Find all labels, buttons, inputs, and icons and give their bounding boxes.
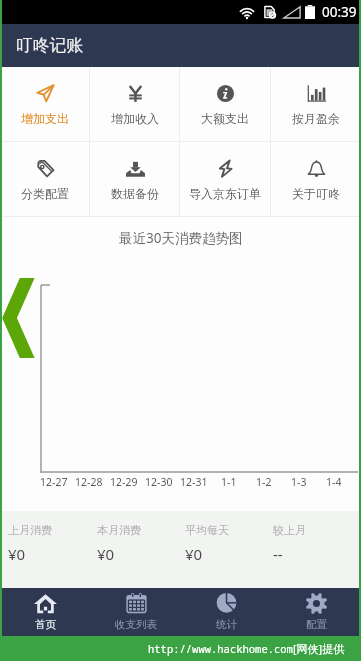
button[interactable]: 关于叮咚 — [271, 142, 361, 216]
staticText: 12-27 — [40, 475, 68, 489]
button[interactable]: 导入京东订单 — [180, 142, 270, 216]
staticText: ¥0 — [97, 544, 115, 564]
button[interactable]: 首页 — [0, 588, 91, 636]
staticText: 首页 — [35, 618, 56, 631]
button[interactable]: 平均每天 — [185, 523, 273, 588]
button[interactable]: 本月消费 — [97, 523, 185, 588]
staticText: 12-28 — [75, 475, 103, 489]
staticText: 大额支出 — [201, 111, 249, 126]
staticText: 12-29 — [110, 475, 138, 489]
staticText: 按月盈余 — [292, 111, 340, 126]
staticText: 统计 — [216, 618, 237, 631]
staticText: 增加收入 — [111, 111, 159, 126]
button[interactable]: 上月消费 — [8, 523, 97, 588]
staticText: 叮咚记账 — [16, 35, 84, 56]
staticText: 1-1 — [221, 475, 237, 489]
staticText: ¥0 — [185, 544, 203, 564]
staticText: -- — [273, 544, 283, 564]
staticText: 1-3 — [291, 475, 307, 489]
staticText: 导入京东订单 — [189, 186, 261, 201]
button[interactable]: 数据备份 — [90, 142, 179, 216]
staticText: [网侠]提供 — [293, 641, 345, 656]
staticText: 00:39 — [322, 3, 357, 21]
button[interactable]: 叮咚记账 — [0, 24, 361, 67]
button[interactable]: 大额支出 — [180, 67, 270, 141]
staticText: 较上月 — [273, 523, 306, 537]
staticText: 平均每天 — [185, 523, 229, 537]
staticText: 上月消费 — [8, 523, 52, 537]
staticText: 收支列表 — [115, 618, 157, 631]
staticText: 数据备份 — [111, 186, 159, 201]
staticText: 最近30天消费趋势图 — [119, 229, 243, 247]
button[interactable]: 增加支出 — [0, 67, 89, 141]
button[interactable]: 配置 — [271, 588, 361, 636]
button[interactable]: 按月盈余 — [271, 67, 361, 141]
button[interactable]: 较上月 — [273, 523, 361, 588]
staticText: 配置 — [306, 618, 327, 631]
staticText: 增加支出 — [21, 111, 69, 126]
staticText: 12-30 — [145, 475, 173, 489]
staticText: 本月消费 — [97, 523, 141, 537]
staticText: http://www.hackhome.com — [148, 642, 293, 656]
button[interactable]: 分类配置 — [0, 142, 89, 216]
staticText: 1-4 — [326, 475, 342, 489]
staticText: 12-31 — [180, 475, 208, 489]
staticText: 分类配置 — [21, 186, 69, 201]
staticText: 关于叮咚 — [292, 186, 340, 201]
staticText: 1-2 — [256, 475, 272, 489]
button[interactable]: 增加收入 — [90, 67, 179, 141]
button[interactable]: 收支列表 — [91, 588, 181, 636]
staticText: ¥0 — [8, 544, 26, 564]
button[interactable]: 统计 — [181, 588, 271, 636]
